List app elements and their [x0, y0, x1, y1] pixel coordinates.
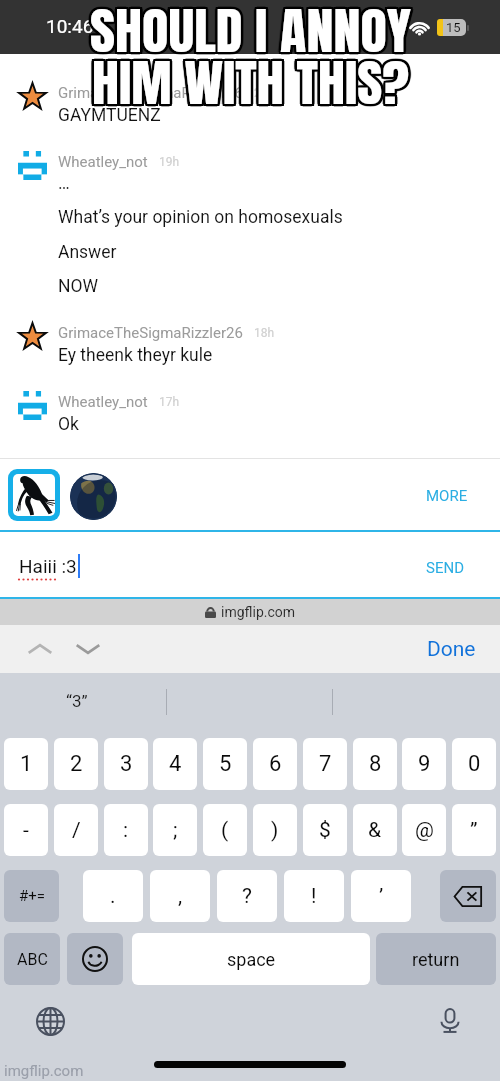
button[interactable]: .	[83, 870, 143, 922]
staticText: ABC	[17, 950, 48, 969]
button[interactable]: return	[376, 933, 496, 985]
button[interactable]: Earth image	[70, 473, 117, 520]
staticText: SHOULD I ANNOY	[89, 0, 411, 69]
button[interactable]: ”	[452, 804, 496, 856]
button[interactable]: !	[284, 870, 344, 922]
button[interactable]: Backspace	[440, 870, 496, 922]
staticText: Ok	[58, 414, 79, 435]
staticText: SHOULD I ANNOY	[87, 0, 409, 70]
staticText: HIM WITH THIS?	[91, 47, 408, 122]
button[interactable]: $	[303, 804, 347, 856]
staticText: HIM WITH THIS?	[94, 47, 411, 122]
staticText: ’	[379, 884, 384, 909]
staticText: 20h	[254, 86, 275, 100]
button[interactable]: Change keyboard	[32, 1003, 68, 1039]
staticText: SEND	[426, 559, 464, 577]
staticText: ;	[173, 818, 178, 843]
button[interactable]: 6	[253, 738, 297, 790]
staticText: HIM WITH THIS?	[94, 43, 411, 118]
staticText: (	[221, 818, 229, 843]
button[interactable]: Next field	[70, 631, 106, 667]
staticText: Haiii :3	[19, 555, 77, 577]
staticText: 10:46	[46, 15, 94, 37]
staticText: &	[368, 818, 382, 843]
staticText: MORE	[426, 487, 468, 505]
button[interactable]: MORE	[426, 487, 468, 505]
button[interactable]: 1	[4, 738, 48, 790]
button[interactable]: -	[4, 804, 48, 856]
staticText: $	[319, 818, 331, 843]
staticText: 1	[20, 751, 33, 777]
staticText: HIM WITH THIS?	[89, 45, 407, 120]
staticText: NOW	[58, 276, 99, 297]
button[interactable]: ABC	[4, 933, 60, 985]
staticText: Answer	[58, 242, 117, 263]
button[interactable]: (	[203, 804, 247, 856]
button[interactable]: Done	[427, 637, 476, 662]
button[interactable]: ?	[217, 870, 277, 922]
staticText: HIM WITH THIS?	[93, 46, 410, 121]
button[interactable]: 9	[402, 738, 446, 790]
staticText: HIM WITH THIS?	[93, 47, 410, 122]
staticText: SHOULD I ANNOY	[89, 0, 411, 71]
staticText: GrimaceTheSigmaRizzler26	[58, 84, 243, 102]
staticText: .	[110, 884, 116, 909]
staticText: GrimaceTheSigmaRizzler26	[58, 324, 243, 342]
button[interactable]: /	[54, 804, 98, 856]
button[interactable]: ’	[351, 870, 411, 922]
staticText: 9	[418, 751, 431, 777]
staticText: #+=	[19, 887, 45, 905]
staticText: Wheatley_not	[58, 393, 148, 411]
button[interactable]: #+=	[4, 870, 59, 922]
button[interactable]: SEND	[426, 559, 464, 577]
staticText: SHOULD I ANNOY	[86, 0, 408, 68]
button[interactable]: ;	[153, 804, 197, 856]
staticText: SHOULD I ANNOY	[88, 0, 410, 68]
button[interactable]: space	[132, 933, 370, 985]
staticText: SHOULD I ANNOY	[87, 0, 409, 66]
button[interactable]: 7	[303, 738, 347, 790]
staticText: ”	[470, 818, 478, 843]
staticText: Wheatley_not	[58, 153, 148, 171]
staticText: HIM WITH THIS?	[92, 42, 409, 117]
button[interactable]: 3	[104, 738, 148, 790]
staticText: imgflip.com	[4, 1062, 84, 1080]
button[interactable]: :	[104, 804, 148, 856]
button[interactable]: @	[402, 804, 446, 856]
staticText: SHOULD I ANNOY	[88, 0, 410, 70]
staticText: …	[58, 173, 70, 194]
button[interactable]: 5	[203, 738, 247, 790]
staticText: 18h	[254, 326, 275, 340]
staticText: @	[415, 818, 434, 843]
staticText: HIM WITH THIS?	[89, 47, 407, 122]
staticText: 0	[468, 751, 481, 777]
staticText: HIM WITH THIS?	[92, 45, 409, 120]
staticText: HIM WITH THIS?	[93, 45, 410, 120]
button[interactable]: ,	[150, 870, 210, 922]
staticText: HIM WITH THIS?	[92, 46, 409, 121]
button[interactable]: Emoji keyboard	[67, 933, 123, 985]
staticText: 2	[70, 751, 83, 777]
staticText: HIM WITH THIS?	[92, 43, 409, 118]
staticText: HIM WITH THIS?	[89, 43, 407, 118]
staticText: -	[23, 818, 29, 843]
button[interactable]: 8	[353, 738, 397, 790]
staticText: SHOULD I ANNOY	[89, 0, 411, 68]
button[interactable]: Dictation	[432, 1003, 468, 1039]
button[interactable]: 0	[452, 738, 496, 790]
staticText: :	[123, 818, 129, 843]
button[interactable]: 4	[153, 738, 197, 790]
button[interactable]: 2	[54, 738, 98, 790]
staticText: HIM WITH THIS?	[91, 43, 408, 118]
staticText: SHOULD I ANNOY	[87, 0, 409, 68]
button[interactable]: &	[353, 804, 397, 856]
button[interactable]: Selected meme image	[13, 474, 55, 516]
button[interactable]: Previous field	[22, 631, 58, 667]
staticText: SHOULD I ANNOY	[89, 0, 411, 70]
staticText: SHOULD I ANNOY	[91, 0, 412, 69]
staticText: HIM WITH THIS?	[92, 48, 409, 123]
staticText: 6	[269, 751, 282, 777]
staticText: SHOULD I ANNOY	[92, 0, 414, 70]
button[interactable]: )	[253, 804, 297, 856]
staticText: SHOULD I ANNOY	[92, 0, 414, 67]
